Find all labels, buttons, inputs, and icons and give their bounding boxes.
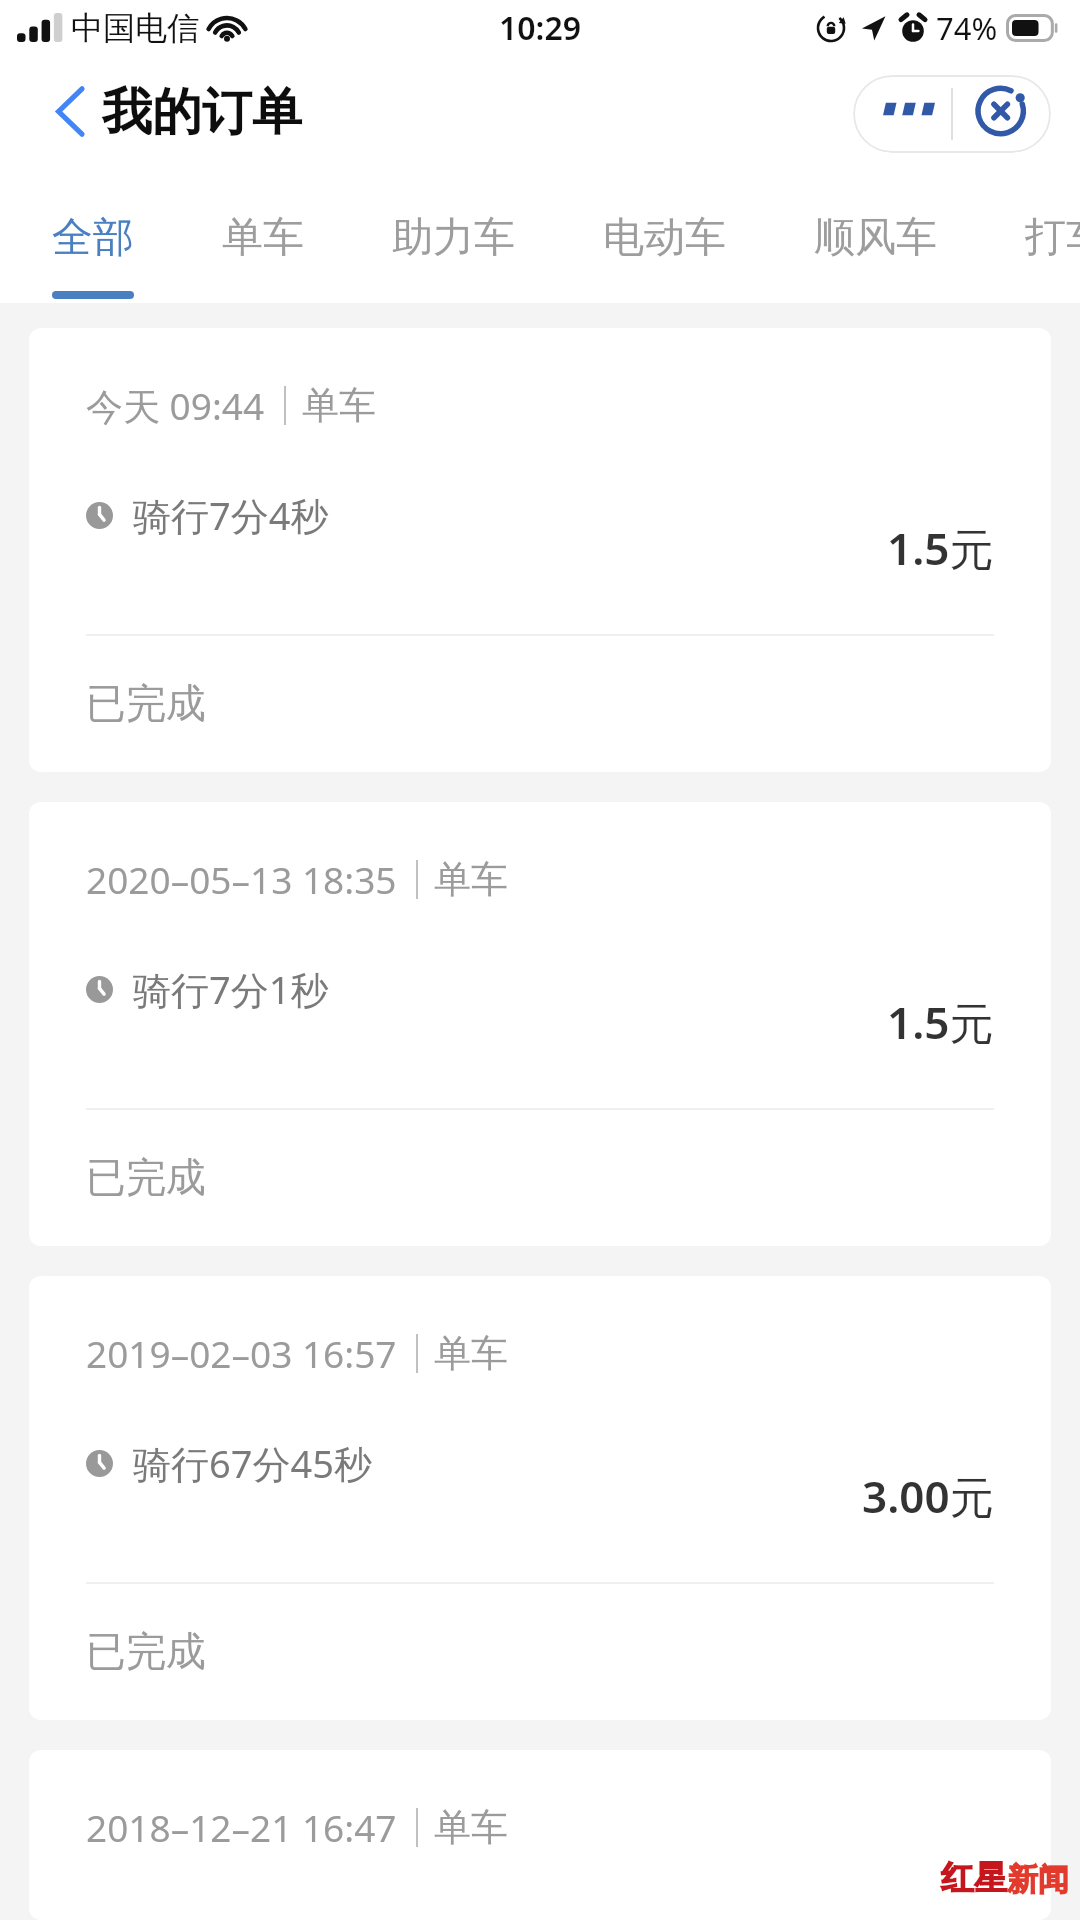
button[interactable]: Close mini program (953, 75, 1051, 153)
staticText: 骑行67分45秒 (133, 1437, 372, 1489)
staticText: 助力车 (392, 212, 515, 264)
button[interactable]: Back (52, 82, 302, 145)
staticText: 我的订单 (102, 81, 302, 144)
staticText: 新闻 (1007, 1860, 1069, 1899)
button[interactable]: 2018–12–21 16:47 (29, 1750, 1051, 1920)
staticText: 2019–02–03 16:57 (86, 1328, 397, 1378)
staticText: 1.5元 (887, 518, 994, 578)
staticText: 74% (936, 7, 998, 49)
staticText: 单车 (222, 212, 304, 264)
staticText: 2020–05–13 18:35 (86, 854, 397, 904)
staticText: 单车 (302, 382, 376, 429)
button[interactable]: More (853, 75, 951, 153)
button[interactable]: 打车 (1025, 172, 1080, 303)
staticText: 今天 09:44 (86, 380, 265, 431)
staticText: 1.5元 (887, 992, 994, 1052)
staticText: 骑行7分1秒 (133, 963, 329, 1015)
button[interactable]: 今天 09:44 (29, 328, 1051, 772)
staticText: 全部 (52, 212, 134, 264)
staticText: 单车 (434, 1804, 508, 1851)
staticText: 单车 (434, 1330, 508, 1377)
staticText: 已完成 (86, 1626, 206, 1676)
staticText: 已完成 (86, 1152, 206, 1202)
staticText: 已完成 (86, 678, 206, 728)
staticText: 单车 (434, 856, 508, 903)
staticText: 3.00元 (862, 1466, 994, 1526)
staticText: 电动车 (603, 212, 726, 264)
button[interactable]: 2019–02–03 16:57 (29, 1276, 1051, 1720)
staticText: 顺风车 (814, 212, 937, 264)
button[interactable]: 2020–05–13 18:35 (29, 802, 1051, 1246)
button[interactable]: 顺风车 (814, 172, 937, 303)
staticText: 打车 (1025, 212, 1080, 264)
button[interactable]: 助力车 (392, 172, 515, 303)
staticText: 2018–12–21 16:47 (86, 1802, 397, 1852)
button[interactable]: 单车 (222, 172, 304, 303)
staticText: 中国电信 (71, 8, 199, 48)
staticText: 10:29 (499, 6, 582, 50)
staticText: 红星 (941, 1857, 1007, 1899)
button[interactable]: 电动车 (603, 172, 726, 303)
button[interactable]: 全部 (52, 172, 134, 303)
staticText: 骑行7分4秒 (133, 489, 329, 541)
